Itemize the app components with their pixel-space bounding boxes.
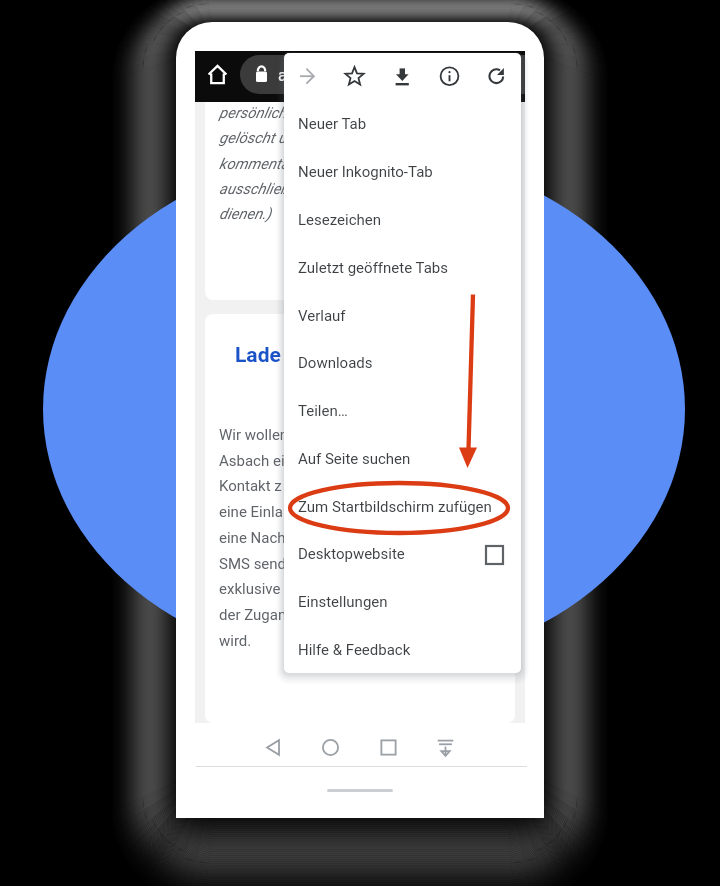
- button[interactable]: Forward: [292, 61, 323, 92]
- button[interactable]: Home: [208, 65, 227, 84]
- button[interactable]: Hilfe & Feedback: [284, 627, 521, 675]
- button[interactable]: Back: [262, 736, 285, 759]
- button[interactable]: Bookmark: [339, 61, 370, 92]
- staticText: Kontakt z: [219, 477, 282, 495]
- staticText: der Zugan: [219, 606, 287, 624]
- staticText: Zuletzt geöffnete Tabs: [298, 259, 449, 277]
- button[interactable]: Auf Seite suchen: [284, 436, 521, 484]
- staticText: Einstellungen: [298, 593, 388, 611]
- staticText: Desktopwebsite: [298, 545, 405, 563]
- staticText: exklusive: [219, 580, 281, 598]
- staticText: a: [278, 66, 287, 85]
- button[interactable]: Neuer Inkognito-Tab: [284, 149, 521, 197]
- staticText: gelöscht un: [219, 129, 295, 147]
- staticText: Hilfe & Feedback: [298, 641, 411, 659]
- button[interactable]: Download: [387, 61, 418, 92]
- staticText: SMS send: [219, 555, 287, 573]
- button[interactable]: Zuletzt geöffnete Tabs: [284, 245, 521, 293]
- button[interactable]: Page info: [434, 61, 465, 92]
- staticText: Lesezeichen: [298, 211, 382, 229]
- button[interactable]: Desktopwebsite: [284, 531, 521, 579]
- button[interactable]: Reload: [481, 61, 512, 92]
- button[interactable]: Lesezeichen: [284, 197, 521, 245]
- staticText: persönliche: [219, 104, 295, 122]
- staticText: Asbach ei: [219, 452, 285, 470]
- staticText: Downloads: [298, 354, 373, 372]
- button[interactable]: Einstellungen: [284, 579, 521, 627]
- staticText: Wir wollen: [219, 426, 289, 444]
- staticText: Verlauf: [298, 307, 346, 325]
- button[interactable]: Hide keyboard: [434, 736, 457, 759]
- staticText: dienen.): [219, 205, 272, 223]
- staticText: Teilen…: [298, 402, 348, 420]
- staticText: Neuer Inkognito-Tab: [298, 163, 433, 181]
- staticText: Lade: [235, 343, 281, 368]
- button[interactable]: Neuer Tab: [284, 101, 521, 149]
- staticText: kommentar: [219, 155, 294, 173]
- staticText: ausschließl: [219, 180, 293, 198]
- button[interactable]: Downloads: [284, 340, 521, 388]
- staticText: Zum Startbildschirm zufügen: [298, 498, 492, 516]
- button[interactable]: Home: [319, 736, 342, 759]
- button[interactable]: Zum Startbildschirm zufügen: [284, 484, 521, 532]
- button[interactable]: Recent apps: [377, 736, 400, 759]
- button[interactable]: Teilen…: [284, 388, 521, 436]
- staticText: eine Nach: [219, 529, 286, 547]
- staticText: wird.: [219, 632, 252, 650]
- staticText: eine Einla: [219, 503, 283, 521]
- button[interactable]: Verlauf: [284, 293, 521, 341]
- staticText: Auf Seite suchen: [298, 450, 411, 468]
- staticText: Neuer Tab: [298, 115, 367, 133]
